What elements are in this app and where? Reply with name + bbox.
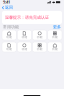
staticText: 常用功能 [3,24,19,29]
staticText: 功能 [6,35,12,39]
staticText: 功能 [6,47,12,51]
button[interactable]: 功能 [17,30,31,40]
button[interactable]: 返回 [1,4,14,10]
button[interactable]: 更多 [53,24,61,29]
staticText: 功能 [52,47,58,51]
staticText: 9:41 [3,0,10,5]
button[interactable]: 功能 [48,42,62,52]
button[interactable]: 功能 [2,30,16,40]
staticText: 功能 [52,35,58,39]
staticText: 返回 [5,5,13,10]
staticText: 温馨提示：请先完成认证 [5,15,49,20]
button[interactable]: 功能 [2,42,16,52]
staticText: 功能 [21,35,27,39]
staticText: 功能 [37,35,43,39]
staticText: 功能 [37,47,43,51]
staticText: 更多 [53,24,61,29]
button[interactable]: 功能 [48,30,62,40]
staticText: 功能 [21,47,27,51]
button[interactable]: 功能 [32,42,47,52]
button[interactable]: 功能 [17,42,31,52]
button[interactable]: 功能 [32,30,47,40]
